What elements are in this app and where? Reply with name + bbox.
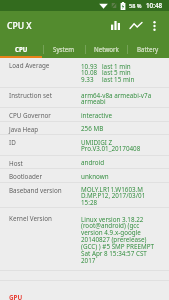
- button[interactable]: System: [43, 40, 85, 58]
- staticText: 256 MB: [81, 124, 104, 133]
- staticText: 10.93 10.08 9.33: [81, 62, 98, 84]
- staticText: arm64-v8a armeabi-v7a armeabi: [81, 91, 152, 106]
- button[interactable]: Bootloader: [0, 169, 169, 183]
- staticText: 10:48: [146, 1, 163, 10]
- staticText: 58 %: [129, 2, 142, 10]
- staticText: CPU Governor: [9, 111, 77, 120]
- staticText: Kernel Version: [9, 214, 77, 223]
- button[interactable]: Java Heap: [0, 122, 169, 135]
- staticText: unknown: [81, 172, 109, 181]
- button[interactable]: ID: [0, 135, 169, 156]
- button[interactable]: CPU: [0, 40, 43, 58]
- button[interactable]: CPU Governor: [0, 108, 169, 122]
- button[interactable]: Statistics: [107, 12, 124, 39]
- button[interactable]: Baseband version: [0, 183, 169, 208]
- staticText: MOLY.LR11.W1603.M D.MP.P12, 2017/03/01 1…: [81, 185, 146, 207]
- staticText: CPU: [15, 45, 28, 53]
- button[interactable]: Trends: [126, 12, 145, 39]
- staticText: UMIDIGI Z Pro.V3.01_20170408: [81, 138, 141, 153]
- staticText: Baseband version: [9, 186, 77, 195]
- staticText: System: [53, 45, 75, 53]
- button[interactable]: More options: [148, 12, 161, 39]
- staticText: GPU: [9, 293, 23, 300]
- button[interactable]: Kernel Version: [0, 208, 169, 271]
- button[interactable]: Host: [0, 156, 169, 169]
- button[interactable]: Load Average: [0, 58, 169, 88]
- staticText: Instruction set: [9, 91, 77, 100]
- button[interactable]: Instruction set: [0, 88, 169, 108]
- staticText: Linux version 3.18.22 (root@android) (gc…: [81, 215, 155, 265]
- staticText: interactive: [81, 111, 113, 120]
- staticText: ID: [9, 138, 77, 147]
- staticText: last 1 min last 5 min last 15 min: [102, 62, 135, 84]
- button[interactable]: Battery: [127, 40, 169, 58]
- staticText: Network: [94, 45, 119, 53]
- button[interactable]: GPU: [0, 281, 169, 300]
- staticText: Host: [9, 159, 77, 168]
- staticText: Bootloader: [9, 172, 77, 181]
- button[interactable]: Network: [85, 40, 127, 58]
- staticText: Battery: [137, 45, 159, 53]
- staticText: CPU X: [7, 20, 32, 32]
- staticText: Load Average: [9, 61, 77, 70]
- staticText: android: [81, 158, 105, 167]
- staticText: Java Heap: [9, 125, 77, 134]
